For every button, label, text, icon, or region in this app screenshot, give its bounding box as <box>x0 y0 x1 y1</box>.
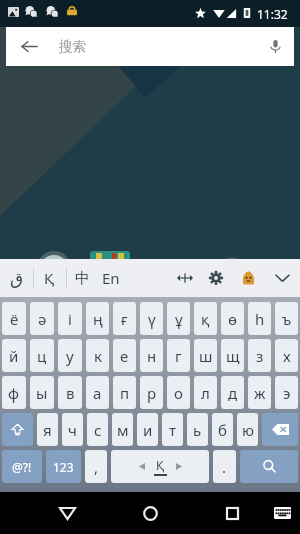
staticText: н <box>147 346 157 366</box>
button[interactable]: Emoji <box>232 259 264 297</box>
button[interactable]: Back <box>6 27 52 66</box>
button[interactable]: Hide keyboard <box>266 259 298 297</box>
staticText: 搜索 <box>59 38 86 55</box>
button[interactable]: Voice search <box>256 27 294 66</box>
button[interactable]: Backspace <box>262 413 298 446</box>
button[interactable]: En <box>95 259 127 297</box>
button[interactable]: Home <box>128 492 172 534</box>
button[interactable]: Settings <box>200 259 232 297</box>
staticText: й <box>9 346 19 366</box>
staticText: ю <box>242 420 254 440</box>
button[interactable]: у <box>58 339 82 372</box>
button[interactable]: Back <box>6 27 294 66</box>
staticText: ж <box>254 383 266 403</box>
button[interactable]: һ <box>248 302 271 335</box>
button[interactable]: н <box>140 339 163 372</box>
staticText: һ <box>255 309 265 329</box>
button[interactable]: щ <box>221 339 244 372</box>
button[interactable]: ұ <box>167 302 190 335</box>
button[interactable]: Қ <box>33 259 66 297</box>
staticText: , <box>94 457 99 477</box>
button[interactable]: Move cursor <box>169 259 201 297</box>
staticText: с <box>94 420 102 440</box>
button[interactable]: е <box>113 339 136 372</box>
button[interactable]: Search <box>240 450 298 483</box>
staticText: б <box>218 420 227 440</box>
staticText: и <box>143 420 153 440</box>
button[interactable]: Shift <box>2 413 33 446</box>
staticText: 中 <box>75 269 90 288</box>
button[interactable]: 中 <box>66 259 98 297</box>
staticText: у <box>66 346 74 366</box>
staticText: ң <box>93 309 103 329</box>
staticText: г <box>175 346 182 366</box>
button[interactable]: ғ <box>113 302 136 335</box>
button[interactable]: ё <box>2 302 26 335</box>
button[interactable]: б <box>212 413 233 446</box>
button[interactable]: і <box>58 302 82 335</box>
staticText: ү <box>148 309 156 329</box>
button[interactable]: м <box>112 413 133 446</box>
staticText: і <box>68 309 72 329</box>
button[interactable]: г <box>167 339 190 372</box>
staticText: к <box>94 346 102 366</box>
button[interactable]: я <box>37 413 58 446</box>
staticText: ъ <box>282 309 292 329</box>
button[interactable]: р <box>140 376 163 409</box>
button[interactable]: в <box>58 376 82 409</box>
button[interactable]: з <box>248 339 271 372</box>
staticText: . <box>222 457 227 477</box>
staticText: ё <box>10 309 19 329</box>
button[interactable]: Space <box>111 450 209 483</box>
button[interactable]: к <box>86 339 109 372</box>
button[interactable]: л <box>194 376 217 409</box>
button[interactable]: Switch keyboard <box>262 492 300 534</box>
button[interactable]: ق <box>0 259 33 297</box>
staticText: з <box>256 346 264 366</box>
staticText: ұ <box>175 309 183 329</box>
staticText: ق <box>10 268 24 288</box>
button[interactable]: Back <box>45 492 89 534</box>
button[interactable]: ъ <box>275 302 298 335</box>
button[interactable]: о <box>167 376 190 409</box>
staticText: ғ <box>121 309 128 329</box>
button[interactable]: ь <box>187 413 208 446</box>
button[interactable]: с <box>87 413 108 446</box>
button[interactable]: т <box>162 413 183 446</box>
button[interactable]: й <box>2 339 26 372</box>
staticText: р <box>147 383 157 403</box>
staticText: я <box>43 420 52 440</box>
button[interactable]: . <box>213 450 236 483</box>
button[interactable]: ч <box>62 413 83 446</box>
staticText: Қ <box>156 457 165 473</box>
staticText: ы <box>36 383 48 403</box>
button[interactable]: ж <box>248 376 271 409</box>
staticText: қ <box>201 309 210 329</box>
staticText: ч <box>68 420 77 440</box>
button[interactable]: ы <box>30 376 54 409</box>
button[interactable]: ә <box>30 302 54 335</box>
staticText: En <box>102 268 120 288</box>
staticText: 11:32 <box>257 6 288 22</box>
staticText: ө <box>228 309 238 329</box>
button[interactable]: ю <box>237 413 258 446</box>
button[interactable]: ө <box>221 302 244 335</box>
button[interactable]: ң <box>86 302 109 335</box>
button[interactable]: д <box>221 376 244 409</box>
button[interactable]: қ <box>194 302 217 335</box>
staticText: в <box>66 383 75 403</box>
button[interactable]: ү <box>140 302 163 335</box>
button[interactable]: п <box>113 376 136 409</box>
button[interactable]: , <box>85 450 107 483</box>
button[interactable]: х <box>275 339 298 372</box>
button[interactable]: ф <box>2 376 26 409</box>
button[interactable]: Recent apps <box>210 492 254 534</box>
staticText: э <box>283 383 291 403</box>
button[interactable]: 123 <box>46 450 81 483</box>
button[interactable]: ш <box>194 339 217 372</box>
button[interactable]: ц <box>30 339 54 372</box>
button[interactable]: а <box>86 376 109 409</box>
button[interactable]: @?! <box>2 450 42 483</box>
button[interactable]: э <box>275 376 298 409</box>
button[interactable]: и <box>137 413 158 446</box>
